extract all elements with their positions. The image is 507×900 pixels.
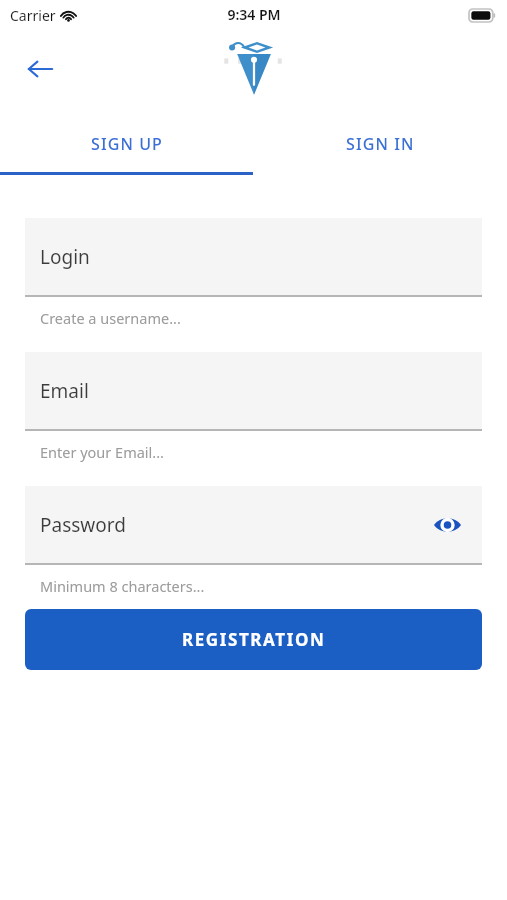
staticText: Carrier: [10, 6, 56, 25]
staticText: Password: [40, 512, 126, 538]
staticText: Login: [40, 244, 90, 270]
staticText: Minimum 8 characters...: [40, 576, 205, 596]
button[interactable]: Show password: [430, 508, 464, 542]
staticText: Email: [40, 378, 89, 404]
staticText: SIGN UP: [91, 133, 163, 155]
staticText: SIGN IN: [346, 133, 415, 155]
button[interactable]: Password: [25, 486, 482, 563]
button[interactable]: Back: [18, 47, 62, 91]
button[interactable]: SIGN UP: [0, 116, 253, 172]
staticText: Enter your Email...: [40, 442, 164, 462]
button[interactable]: Login: [25, 218, 482, 295]
button[interactable]: SIGN IN: [253, 116, 507, 172]
button[interactable]: REGISTRATION: [25, 609, 482, 670]
staticText: REGISTRATION: [182, 628, 326, 651]
staticText: 9:34 PM: [227, 5, 281, 24]
button[interactable]: Email: [25, 352, 482, 429]
staticText: Create a username...: [40, 308, 181, 328]
